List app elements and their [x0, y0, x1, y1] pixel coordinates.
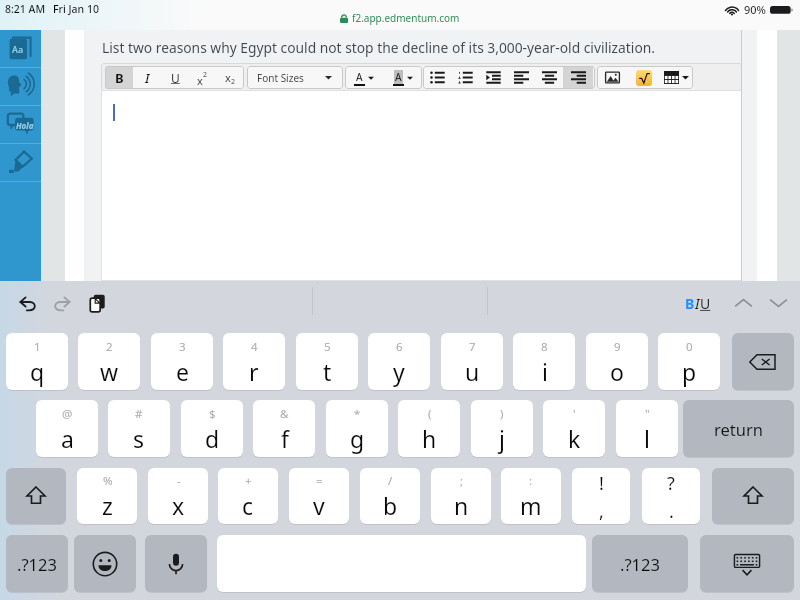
- staticText: /: [388, 473, 393, 489]
- staticText: ,: [599, 499, 604, 524]
- button[interactable]: [507, 66, 535, 89]
- button[interactable]: Previous field: [727, 287, 759, 319]
- button[interactable]: Redo: [45, 286, 79, 320]
- staticText: Aa: [12, 43, 24, 55]
- button[interactable]: return: [683, 400, 794, 457]
- button[interactable]: A: [345, 66, 383, 89]
- button[interactable]: @: [36, 400, 98, 457]
- staticText: 3: [179, 339, 186, 355]
- button[interactable]: 4: [223, 333, 285, 390]
- button[interactable]: 9: [586, 333, 648, 390]
- staticText: 0: [686, 339, 693, 355]
- button[interactable]: x: [189, 66, 216, 89]
- button[interactable]: Highlighter: [0, 144, 41, 182]
- button[interactable]: [563, 66, 593, 89]
- staticText: (: [428, 406, 432, 422]
- button[interactable]: (: [398, 400, 460, 457]
- staticText: I: [145, 69, 150, 87]
- button[interactable]: .?123: [6, 535, 68, 592]
- button[interactable]: Font Sizes: [247, 66, 343, 89]
- staticText: i: [542, 356, 548, 387]
- staticText: a: [61, 423, 74, 454]
- staticText: u: [465, 356, 480, 387]
- staticText: 8:21 AM: [5, 2, 46, 16]
- button[interactable]: 1: [6, 333, 68, 390]
- button[interactable]: [451, 66, 479, 89]
- button[interactable]: Paste: [80, 286, 114, 320]
- staticText: .?123: [17, 553, 57, 575]
- staticText: Font Sizes: [257, 71, 304, 85]
- staticText: &: [280, 406, 289, 422]
- button[interactable]: =: [289, 468, 349, 524]
- staticText: ": [645, 406, 650, 422]
- button[interactable]: 0: [658, 333, 720, 390]
- button[interactable]: B: [105, 66, 133, 89]
- button[interactable]: 5: [296, 333, 358, 390]
- button[interactable]: *: [326, 400, 388, 457]
- button[interactable]: 6: [368, 333, 430, 390]
- staticText: #: [135, 406, 143, 422]
- staticText: B: [685, 294, 695, 313]
- button[interactable]: -: [148, 468, 208, 524]
- button[interactable]: [479, 66, 507, 89]
- button[interactable]: emoji: [74, 535, 136, 592]
- button[interactable]: [660, 66, 693, 89]
- button[interactable]: 8: [513, 333, 575, 390]
- button[interactable]: ?: [642, 468, 700, 524]
- button[interactable]: hidekb: [700, 535, 794, 592]
- button[interactable]: Translate: [0, 106, 41, 144]
- button[interactable]: $: [181, 400, 243, 457]
- button[interactable]: [628, 66, 660, 89]
- staticText: q: [30, 356, 45, 387]
- button[interactable]: [597, 66, 628, 89]
- staticText: :: [529, 473, 533, 489]
- button[interactable]: &: [253, 400, 315, 457]
- button[interactable]: ': [543, 400, 605, 457]
- button[interactable]: B: [683, 294, 713, 313]
- button[interactable]: Next field: [762, 287, 794, 319]
- staticText: %: [103, 473, 113, 489]
- button[interactable]: 2: [78, 333, 140, 390]
- button[interactable]: mic: [145, 535, 207, 592]
- button[interactable]: .?123: [592, 535, 688, 592]
- staticText: A: [395, 70, 402, 84]
- button[interactable]: Dictionary: [0, 30, 41, 68]
- staticText: return: [714, 418, 763, 440]
- button[interactable]: ;: [431, 468, 491, 524]
- staticText: .?123: [620, 553, 660, 575]
- button[interactable]: [535, 66, 563, 89]
- staticText: I: [695, 294, 700, 313]
- staticText: Fri Jan 10: [53, 2, 99, 16]
- staticText: List two reasons why Egypt could not sto…: [102, 38, 655, 57]
- button[interactable]: backspace: [732, 333, 794, 390]
- button[interactable]: Undo: [10, 286, 44, 320]
- staticText: k: [568, 423, 581, 454]
- staticText: !: [599, 471, 604, 496]
- button[interactable]: shift: [6, 468, 66, 524]
- button[interactable]: +: [218, 468, 278, 524]
- button[interactable]: U: [161, 66, 189, 89]
- button[interactable]: /: [360, 468, 420, 524]
- button[interactable]: [423, 66, 451, 89]
- button[interactable]: shift: [712, 468, 794, 524]
- staticText: A: [356, 70, 363, 84]
- button[interactable]: 7: [441, 333, 503, 390]
- button[interactable]: :: [501, 468, 561, 524]
- staticText: U: [700, 294, 711, 313]
- button[interactable]: %: [77, 468, 137, 524]
- staticText: n: [454, 490, 469, 521]
- button[interactable]: !: [572, 468, 630, 524]
- button[interactable]: I: [133, 66, 161, 89]
- button[interactable]: Read aloud: [0, 68, 41, 106]
- button[interactable]: x: [216, 66, 244, 89]
- staticText: ?: [667, 471, 675, 496]
- button[interactable]: #: [108, 400, 170, 457]
- button[interactable]: ": [616, 400, 678, 457]
- staticText: m: [520, 490, 542, 521]
- staticText: s: [133, 423, 145, 454]
- button[interactable]: ): [471, 400, 533, 457]
- button[interactable]: 3: [151, 333, 213, 390]
- staticText: j: [499, 423, 505, 454]
- button[interactable]: A: [383, 66, 422, 89]
